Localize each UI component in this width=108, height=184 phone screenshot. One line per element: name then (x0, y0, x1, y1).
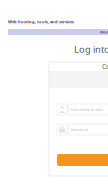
staticText: Con (102, 62, 108, 71)
button[interactable]: Home (8, 29, 108, 35)
staticText: Home (100, 29, 108, 35)
staticText: Web hosting, tools, and services (8, 19, 74, 24)
staticText: Username or dom (70, 107, 103, 112)
staticText: Log into (74, 43, 108, 55)
staticText: Password (70, 127, 87, 132)
button[interactable]: Log in (57, 154, 108, 166)
